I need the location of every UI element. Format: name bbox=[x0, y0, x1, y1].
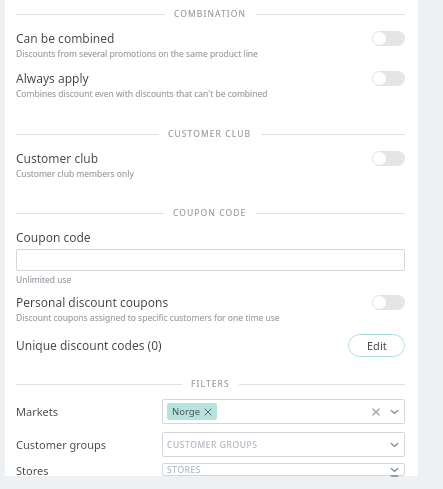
staticText: COMBINATION bbox=[174, 8, 247, 20]
staticText: STORES bbox=[167, 464, 202, 476]
button[interactable]: Always apply bbox=[372, 71, 405, 86]
button[interactable]: Can be combined bbox=[372, 31, 405, 46]
staticText: Customer club members only bbox=[16, 168, 134, 180]
staticText: Unlimited use bbox=[16, 274, 72, 286]
staticText: Markets bbox=[16, 404, 162, 419]
staticText: Stores bbox=[16, 463, 162, 476]
button[interactable]: Norge bbox=[172, 405, 212, 418]
staticText: Customer club bbox=[16, 150, 99, 166]
staticText: Can be combined bbox=[16, 30, 115, 46]
button[interactable]: Customer club bbox=[16, 150, 405, 180]
button[interactable]: Open Markets bbox=[389, 406, 400, 417]
button[interactable]: Edit bbox=[348, 334, 405, 357]
button[interactable]: Personal discount coupons bbox=[16, 294, 405, 324]
staticText: CUSTOMER GROUPS bbox=[167, 439, 258, 451]
staticText: Personal discount coupons bbox=[16, 294, 169, 310]
staticText: FILTERS bbox=[191, 378, 230, 390]
button[interactable]: STORES bbox=[162, 463, 405, 476]
button[interactable]: Open Customer groups bbox=[389, 439, 400, 450]
button[interactable]: Customer club bbox=[372, 151, 405, 166]
button[interactable]: Open Stores bbox=[389, 464, 400, 475]
staticText: Discount coupons assigned to specific cu… bbox=[16, 312, 280, 324]
button[interactable]: Always apply bbox=[16, 70, 405, 100]
staticText: Combines discount even with discounts th… bbox=[16, 88, 268, 100]
button[interactable]: Clear Markets bbox=[370, 406, 382, 418]
button[interactable]: CUSTOMER GROUPS bbox=[162, 432, 405, 457]
staticText: Customer groups bbox=[16, 437, 162, 452]
button[interactable]: Personal discount coupons bbox=[372, 295, 405, 310]
button[interactable] bbox=[16, 249, 405, 271]
staticText: Coupon code bbox=[16, 229, 91, 245]
staticText: COUPON CODE bbox=[173, 207, 247, 219]
staticText: Edit bbox=[367, 338, 387, 353]
button[interactable]: Can be combined bbox=[16, 30, 405, 60]
staticText: Unique discount codes (0) bbox=[16, 337, 348, 353]
staticText: Norge bbox=[172, 405, 200, 418]
staticText: Always apply bbox=[16, 70, 89, 86]
staticText: Discounts from several promotions on the… bbox=[16, 48, 258, 60]
staticText: CUSTOMER CLUB bbox=[168, 128, 252, 140]
button[interactable]: Norge bbox=[162, 399, 405, 424]
